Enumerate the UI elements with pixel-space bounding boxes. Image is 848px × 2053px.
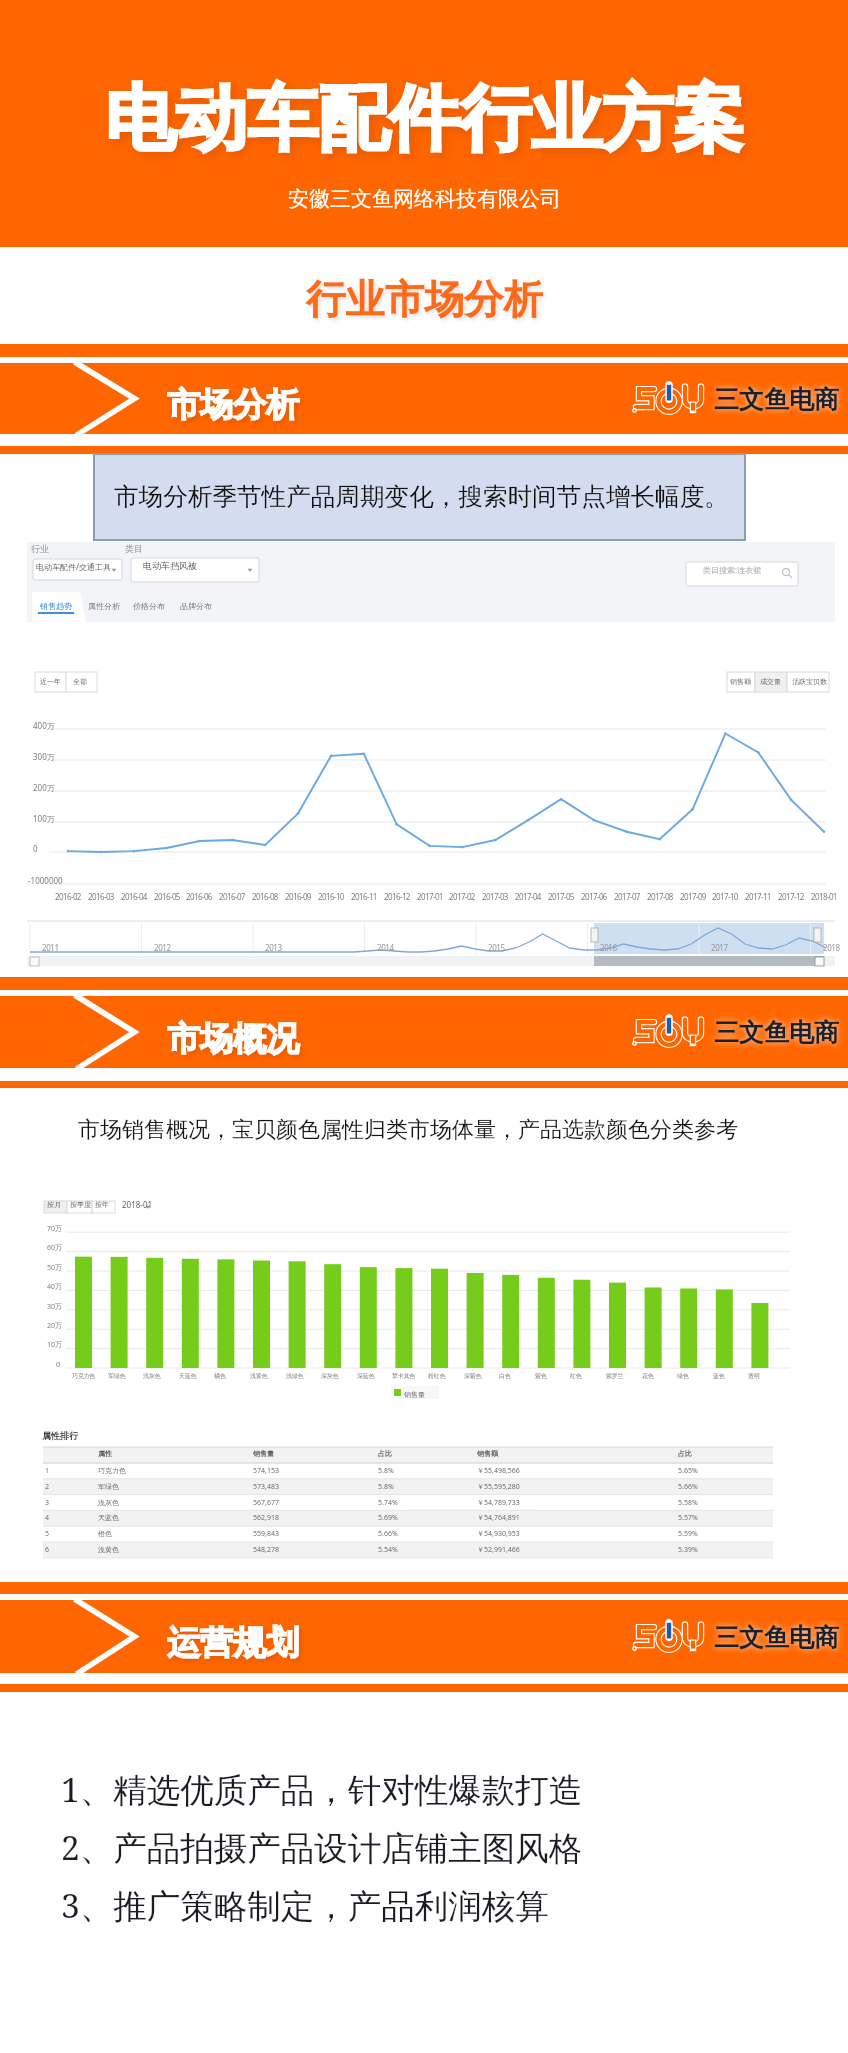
button[interactable]: 按月 bbox=[44, 1201, 67, 1213]
staticText: 运营规划 bbox=[167, 1622, 299, 1664]
button[interactable]: 品牌分布 bbox=[178, 592, 224, 622]
staticText: 2018-01 bbox=[811, 891, 837, 902]
staticText: 按年 bbox=[95, 1200, 109, 1209]
staticText: 2016-04 bbox=[121, 891, 147, 902]
staticText: 548,278 bbox=[253, 1545, 279, 1555]
staticText: 浅黄色 bbox=[98, 1545, 119, 1554]
staticText: 销售额 bbox=[477, 1449, 498, 1458]
button[interactable]: 选择月份 2018-01 bbox=[120, 1198, 152, 1212]
staticText: 深灰色 bbox=[321, 1372, 339, 1380]
staticText: ￥55,595,280 bbox=[477, 1482, 520, 1492]
staticText: 行业 bbox=[31, 543, 49, 554]
staticText: 2017-10 bbox=[712, 891, 738, 902]
staticText: ￥54,764,891 bbox=[477, 1513, 520, 1523]
staticText: 2017-12 bbox=[778, 891, 804, 902]
button[interactable]: 近一年 bbox=[35, 672, 66, 692]
staticText: 浅灰色 bbox=[98, 1498, 119, 1507]
button[interactable]: 按季度 bbox=[67, 1201, 92, 1213]
staticText: 2016-11 bbox=[351, 891, 377, 902]
button[interactable]: 排行第5行 bbox=[43, 1526, 773, 1542]
staticText: 5.59% bbox=[678, 1529, 698, 1539]
staticText: 天蓝色 bbox=[98, 1513, 119, 1522]
staticText: 巧克力色 bbox=[72, 1372, 95, 1380]
staticText: 军绿色 bbox=[108, 1372, 126, 1380]
button[interactable]: 活跃宝贝数 bbox=[787, 672, 829, 692]
staticText: 属性分析 bbox=[88, 601, 120, 611]
staticText: 紫罗兰 bbox=[606, 1372, 624, 1380]
staticText: 2018-01 bbox=[122, 1199, 153, 1210]
staticText: 2、产品拍摄产品设计店铺主图风格 bbox=[61, 1824, 583, 1870]
staticText: 透明 bbox=[748, 1372, 760, 1380]
button[interactable]: 销售额 bbox=[727, 672, 755, 692]
staticText: 类目搜索:连衣裙 bbox=[703, 564, 762, 575]
staticText: 紫色 bbox=[535, 1372, 547, 1380]
button[interactable]: 全部 bbox=[66, 672, 97, 692]
button[interactable]: 类目搜索 bbox=[686, 562, 798, 586]
button[interactable]: 成交量 bbox=[755, 672, 787, 692]
staticText: 2016-08 bbox=[252, 891, 278, 902]
button[interactable]: 市场概况 bbox=[0, 996, 848, 1068]
staticText: 2016-03 bbox=[88, 891, 114, 902]
staticText: 红色 bbox=[570, 1372, 582, 1380]
staticText: 2017 bbox=[711, 942, 728, 953]
staticText: 2017-04 bbox=[515, 891, 541, 902]
staticText: 花色 bbox=[642, 1372, 654, 1380]
staticText: 2016-06 bbox=[186, 891, 212, 902]
button[interactable]: 类目筛选 电动车挡风被 bbox=[131, 558, 259, 582]
staticText: 4 bbox=[45, 1513, 50, 1523]
staticText: 市场销售概况，宝贝颜色属性归类市场体量，产品选款颜色分类参考 bbox=[78, 1116, 738, 1144]
staticText: 5.74% bbox=[378, 1498, 398, 1508]
staticText: 2017-08 bbox=[647, 891, 673, 902]
staticText: 深紫色 bbox=[464, 1372, 482, 1380]
staticText: 2016-07 bbox=[219, 891, 245, 902]
staticText: ￥55,498,566 bbox=[477, 1466, 520, 1476]
staticText: 蓝色 bbox=[713, 1372, 725, 1380]
button[interactable]: 市场分析 bbox=[0, 363, 848, 434]
staticText: 3、推广策略制定，产品利润核算 bbox=[61, 1882, 549, 1928]
staticText: 巧克力色 bbox=[98, 1466, 126, 1475]
button[interactable]: 排行第1行 bbox=[43, 1463, 773, 1479]
button[interactable]: 运营规划 bbox=[0, 1600, 848, 1673]
staticText: 电动车挡风被 bbox=[143, 560, 197, 571]
staticText: 40万 bbox=[47, 1282, 63, 1292]
staticText: 2017-06 bbox=[581, 891, 607, 902]
button[interactable]: 排行第4行 bbox=[43, 1510, 773, 1526]
staticText: 类目 bbox=[125, 543, 143, 554]
staticText: 2016-05 bbox=[154, 891, 180, 902]
button[interactable]: 销售趋势 bbox=[32, 592, 86, 622]
staticText: 400万 bbox=[33, 720, 55, 731]
staticText: ￥52,991,466 bbox=[477, 1545, 520, 1555]
staticText: 100万 bbox=[33, 813, 55, 824]
staticText: 2017-07 bbox=[614, 891, 640, 902]
staticText: 5.66% bbox=[678, 1482, 698, 1492]
staticText: 2017-01 bbox=[417, 891, 443, 902]
button[interactable]: 排行第3行 bbox=[43, 1495, 773, 1511]
staticText: 5.54% bbox=[378, 1545, 398, 1555]
staticText: 559,843 bbox=[253, 1529, 279, 1539]
button[interactable]: 价格分布 bbox=[132, 592, 178, 622]
staticText: 近一年 bbox=[40, 677, 61, 686]
staticText: 浅灰色 bbox=[143, 1372, 161, 1380]
staticText: 2017-02 bbox=[449, 891, 475, 902]
button[interactable]: 行业筛选 电动车配件/交通工具 bbox=[33, 559, 122, 580]
button[interactable]: 排行第2行 bbox=[43, 1479, 773, 1495]
staticText: 安徽三文鱼网络科技有限公司 bbox=[288, 186, 561, 212]
staticText: 白色 bbox=[499, 1372, 511, 1380]
staticText: 市场分析 bbox=[167, 384, 299, 426]
button[interactable]: 属性分析 bbox=[86, 592, 132, 622]
staticText: 0 bbox=[33, 843, 38, 854]
staticText: 2018 bbox=[823, 942, 840, 953]
staticText: 200万 bbox=[33, 782, 55, 793]
staticText: 占比 bbox=[378, 1449, 392, 1458]
staticText: 2016-02 bbox=[55, 891, 81, 902]
staticText: 0 bbox=[56, 1360, 61, 1370]
staticText: 占比 bbox=[678, 1449, 692, 1458]
staticText: 5.8% bbox=[378, 1466, 394, 1476]
staticText: 2016-12 bbox=[384, 891, 410, 902]
button[interactable]: 销售量图例 bbox=[389, 1385, 442, 1401]
staticText: 574,153 bbox=[253, 1466, 279, 1476]
button[interactable]: 按年 bbox=[92, 1201, 115, 1213]
staticText: 橘色 bbox=[214, 1372, 226, 1380]
staticText: 2017-09 bbox=[680, 891, 706, 902]
button[interactable]: 排行第6行 bbox=[43, 1542, 773, 1558]
